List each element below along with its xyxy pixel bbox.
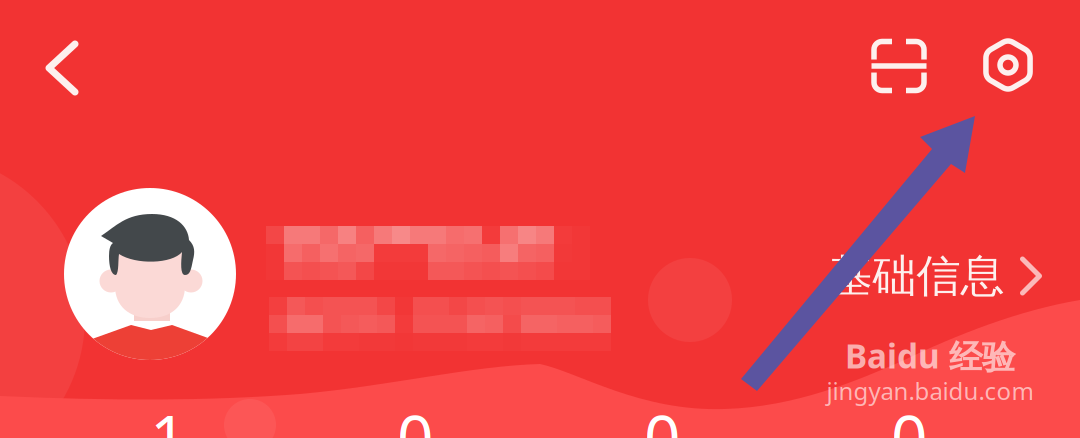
staticText: Baidu 经验 — [845, 333, 1015, 378]
button[interactable]: Settings — [964, 21, 1052, 109]
button[interactable]: Back — [16, 22, 108, 114]
staticText: 0 — [644, 394, 681, 438]
staticText: 基础信息 — [828, 249, 1004, 303]
button[interactable]: Scan — [855, 22, 943, 110]
staticText: 0 — [891, 394, 928, 438]
staticText: 1 — [150, 394, 187, 438]
button[interactable]: 基础信息 — [816, 242, 1055, 310]
staticText: jingyan.baidu.com — [826, 375, 1033, 407]
staticText: 0 — [397, 394, 434, 438]
